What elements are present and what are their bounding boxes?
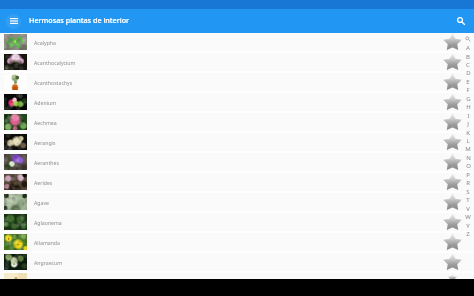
- button[interactable]: E: [462, 78, 474, 86]
- button[interactable]: Add to favorites: [443, 193, 461, 211]
- staticText: Agave: [34, 199, 49, 206]
- button[interactable]: Add to favorites: [443, 233, 461, 251]
- button[interactable]: T: [462, 196, 474, 204]
- staticText: K: [466, 129, 470, 137]
- staticText: Angraecum: [34, 259, 63, 266]
- staticText: L: [466, 137, 470, 145]
- button[interactable]: Aeranthes: [0, 153, 474, 173]
- staticText: Y: [466, 222, 470, 230]
- button[interactable]: Acalypha: [0, 33, 474, 53]
- button[interactable]: Allamanda: [0, 233, 474, 253]
- button[interactable]: Search list: [462, 35, 474, 43]
- button[interactable]: Add to favorites: [443, 253, 461, 271]
- button[interactable]: K: [462, 129, 474, 137]
- staticText: W: [465, 213, 471, 221]
- button[interactable]: Add to favorites: [443, 153, 461, 171]
- button[interactable]: H: [462, 103, 474, 111]
- staticText: Allamanda: [34, 239, 60, 246]
- button[interactable]: V: [462, 205, 474, 213]
- button[interactable]: A: [462, 44, 474, 52]
- staticText: Acalypha: [34, 39, 57, 46]
- staticText: M: [465, 145, 471, 153]
- button[interactable]: Acanthostachys: [0, 73, 474, 93]
- staticText: N: [466, 154, 471, 162]
- staticText: O: [466, 162, 471, 170]
- button[interactable]: Aerides: [0, 173, 474, 193]
- button[interactable]: Adenium: [0, 93, 474, 113]
- staticText: S: [466, 188, 470, 196]
- staticText: F: [466, 86, 470, 94]
- staticText: P: [466, 171, 470, 179]
- staticText: Aechmea: [34, 119, 57, 126]
- button[interactable]: M: [462, 145, 474, 153]
- staticText: Z: [466, 230, 470, 238]
- button[interactable]: G: [462, 95, 474, 103]
- staticText: R: [466, 179, 470, 187]
- button[interactable]: Add to favorites: [443, 33, 461, 51]
- button[interactable]: R: [462, 179, 474, 187]
- staticText: A: [466, 44, 470, 52]
- staticText: Aerides: [34, 179, 53, 186]
- staticText: I: [467, 112, 470, 120]
- staticText: T: [466, 196, 470, 204]
- button[interactable]: Angraecum: [0, 253, 474, 273]
- button[interactable]: Y: [462, 222, 474, 230]
- staticText: Acanthostachys: [34, 79, 73, 86]
- button[interactable]: I: [462, 112, 474, 120]
- staticText: H: [466, 103, 471, 111]
- button[interactable]: Aglaonema: [0, 213, 474, 233]
- staticText: J: [467, 120, 469, 128]
- button[interactable]: Add to favorites: [443, 73, 461, 91]
- button[interactable]: Aechmea: [0, 113, 474, 133]
- button[interactable]: Open navigation drawer: [6, 14, 21, 29]
- button[interactable]: Add to favorites: [443, 275, 461, 279]
- staticText: Hermosas plantas de interior: [29, 15, 130, 25]
- button[interactable]: Add to favorites: [443, 53, 461, 71]
- staticText: B: [466, 53, 470, 61]
- button[interactable]: Aerangis: [0, 133, 474, 153]
- button[interactable]: F: [462, 86, 474, 94]
- button[interactable]: L: [462, 137, 474, 145]
- button[interactable]: W: [462, 213, 474, 221]
- button[interactable]: C: [462, 61, 474, 69]
- staticText: Aeranthes: [34, 159, 59, 166]
- button[interactable]: D: [462, 69, 474, 77]
- button[interactable]: P: [462, 171, 474, 179]
- button[interactable]: Search: [451, 11, 471, 31]
- staticText: Adenium: [34, 99, 57, 106]
- button[interactable]: Add to favorites: [443, 213, 461, 231]
- staticText: C: [466, 61, 470, 69]
- staticText: E: [466, 78, 470, 86]
- button[interactable]: Add to favorites: [443, 113, 461, 131]
- button[interactable]: Add to favorites: [443, 173, 461, 191]
- button[interactable]: Add to favorites: [443, 133, 461, 151]
- button[interactable]: Add to favorites: [0, 273, 474, 279]
- staticText: D: [466, 69, 471, 77]
- button[interactable]: J: [462, 120, 474, 128]
- button[interactable]: Agave: [0, 193, 474, 213]
- button[interactable]: Add to favorites: [443, 93, 461, 111]
- staticText: G: [466, 95, 471, 103]
- button[interactable]: B: [462, 53, 474, 61]
- staticText: Acanthocalycium: [34, 59, 76, 66]
- button[interactable]: Acanthocalycium: [0, 53, 474, 73]
- staticText: Aerangis: [34, 139, 56, 146]
- button[interactable]: O: [462, 162, 474, 170]
- staticText: Aglaonema: [34, 219, 62, 226]
- button[interactable]: N: [462, 154, 474, 162]
- staticText: V: [466, 205, 470, 213]
- button[interactable]: Z: [462, 230, 474, 238]
- button[interactable]: S: [462, 188, 474, 196]
